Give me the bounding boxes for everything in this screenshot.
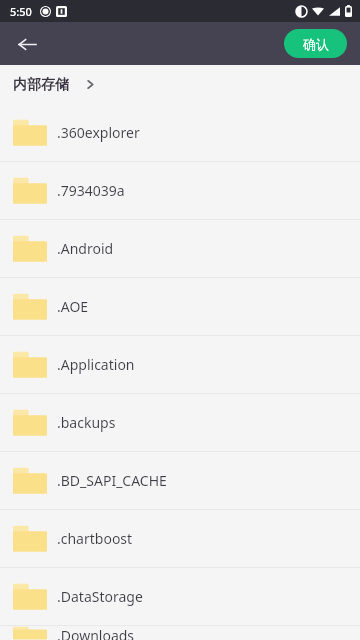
staticText: 内部存储 bbox=[13, 76, 69, 94]
staticText: .BD_SAPI_CACHE bbox=[57, 471, 167, 490]
button[interactable]: .AOE bbox=[0, 278, 360, 335]
staticText: .Application bbox=[57, 355, 135, 374]
staticText: .Android bbox=[57, 239, 114, 258]
staticText: .360explorer bbox=[57, 123, 140, 142]
button[interactable]: .360explorer bbox=[0, 104, 360, 161]
button[interactable]: .chartboost bbox=[0, 510, 360, 567]
staticText: .AOE bbox=[57, 297, 89, 316]
button[interactable]: .BD_SAPI_CACHE bbox=[0, 452, 360, 509]
button[interactable]: .7934039a bbox=[0, 162, 360, 219]
staticText: 确认 bbox=[303, 36, 329, 52]
button[interactable]: Back bbox=[9, 26, 45, 62]
button[interactable]: .Downloads bbox=[0, 626, 360, 640]
staticText: .chartboost bbox=[57, 529, 133, 548]
button[interactable]: 确认 bbox=[284, 29, 347, 58]
button[interactable]: .Application bbox=[0, 336, 360, 393]
staticText: .backups bbox=[57, 413, 116, 432]
staticText: .Downloads bbox=[57, 626, 135, 640]
button[interactable]: .backups bbox=[0, 394, 360, 451]
staticText: .DataStorage bbox=[57, 587, 143, 606]
button[interactable]: .DataStorage bbox=[0, 568, 360, 625]
staticText: .7934039a bbox=[57, 181, 125, 200]
button[interactable]: 内部存储 bbox=[0, 65, 96, 104]
staticText: 5:50 bbox=[10, 4, 32, 19]
button[interactable]: .Android bbox=[0, 220, 360, 277]
